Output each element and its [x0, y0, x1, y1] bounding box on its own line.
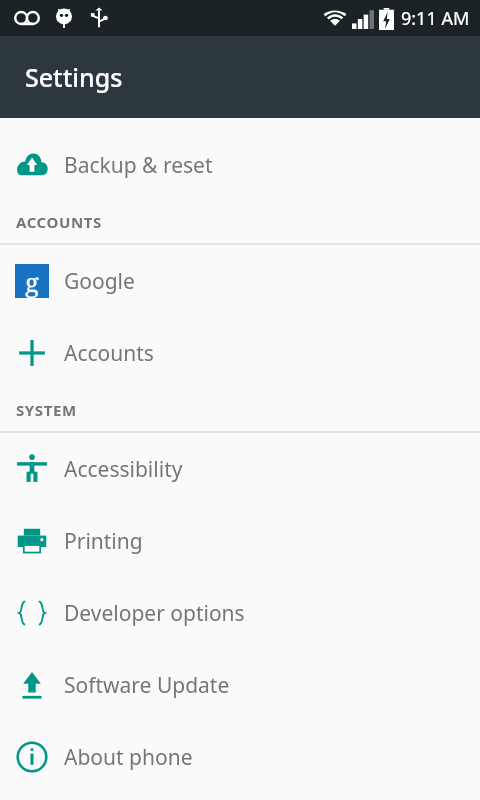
button[interactable]: Software Update [0, 649, 480, 721]
button[interactable]: Accessibility [0, 433, 480, 505]
staticText: Accessibility [64, 455, 183, 484]
staticText: Google [64, 267, 135, 296]
staticText: Backup & reset [64, 151, 213, 180]
staticText: Developer options [64, 599, 245, 628]
staticText: Settings [25, 60, 123, 94]
button[interactable]: Accounts [0, 317, 480, 389]
staticText: Software Update [64, 671, 230, 700]
staticText: Printing [64, 527, 143, 556]
button[interactable]: g [0, 245, 480, 317]
button[interactable]: Backup & reset [0, 129, 480, 201]
button[interactable]: Developer options [0, 577, 480, 649]
staticText: SYSTEM [16, 400, 77, 420]
staticText: About phone [64, 743, 193, 772]
staticText: 9:11 AM [401, 6, 470, 31]
button[interactable]: Printing [0, 505, 480, 577]
staticText: g [25, 264, 39, 298]
staticText: Accounts [64, 339, 154, 368]
staticText: ACCOUNTS [16, 212, 102, 232]
button[interactable]: About phone [0, 721, 480, 793]
